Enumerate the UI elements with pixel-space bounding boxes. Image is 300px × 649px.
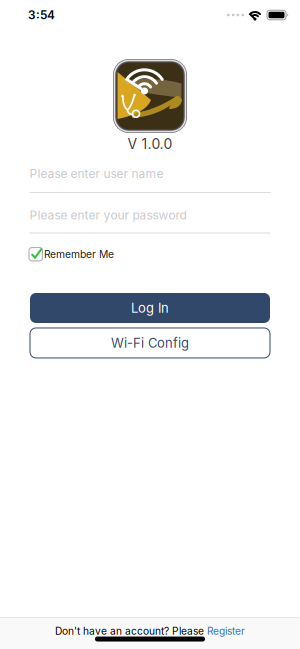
staticText: Please enter your password	[29, 208, 186, 222]
staticText: Don't have an account? Please	[55, 625, 204, 637]
button[interactable]: Log In	[30, 293, 270, 323]
staticText: Wi-Fi Config	[111, 335, 189, 351]
button[interactable]: Register	[207, 625, 245, 637]
staticText: Remember Me	[44, 248, 114, 260]
button[interactable]: Wi-Fi Config	[30, 328, 270, 358]
button[interactable]: Remember Me	[29, 247, 114, 261]
staticText: Log In	[131, 300, 169, 316]
staticText: V 1.0.0	[127, 135, 172, 152]
button[interactable]: Password	[29, 208, 270, 233]
staticText: Register	[207, 625, 245, 637]
staticText: Please enter user name	[29, 166, 163, 181]
staticText: 3:54	[28, 8, 55, 22]
button[interactable]: User name	[29, 166, 270, 193]
